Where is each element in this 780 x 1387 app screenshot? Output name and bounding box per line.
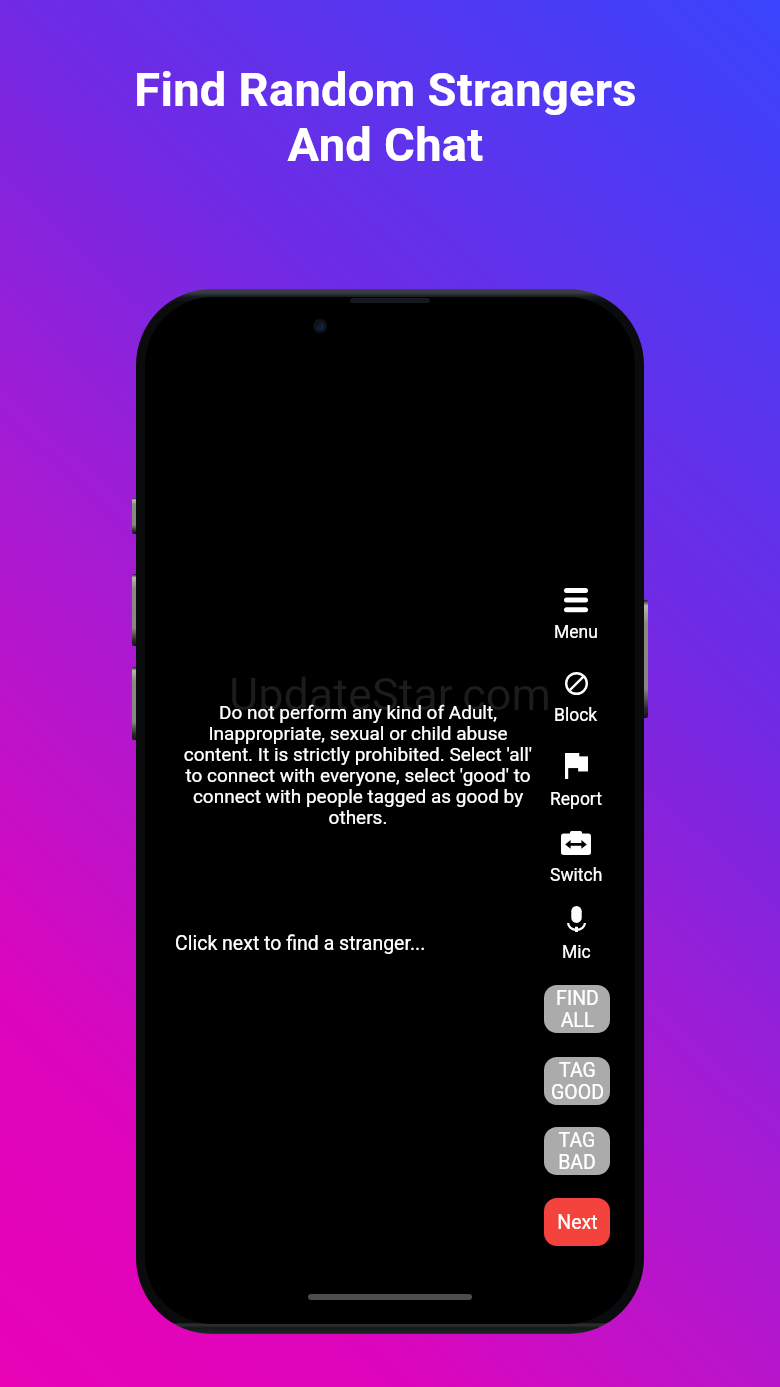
button[interactable]: TAG BAD — [544, 1127, 610, 1175]
button[interactable]: FIND ALL — [544, 985, 610, 1033]
staticText: FIND ALL — [556, 987, 599, 1032]
staticText: Switch — [550, 865, 603, 886]
staticText: TAG GOOD — [551, 1059, 604, 1104]
staticText: TAG BAD — [558, 1129, 596, 1174]
button[interactable]: Switch — [542, 831, 610, 886]
button[interactable]: Block — [542, 672, 610, 726]
staticText: Block — [554, 705, 598, 726]
staticText: Click next to find a stranger... — [175, 932, 426, 955]
button[interactable]: Mic — [542, 906, 610, 963]
staticText: Do not perform any kind of Adult, Inappr… — [180, 701, 536, 828]
staticText: Find Random Strangers And Chat — [134, 62, 637, 173]
button[interactable]: Menu — [542, 588, 610, 643]
button[interactable]: Next — [544, 1198, 610, 1246]
staticText: Mic — [562, 942, 591, 963]
button[interactable]: TAG GOOD — [544, 1057, 610, 1105]
staticText: Next — [557, 1211, 598, 1234]
staticText: Report — [550, 789, 602, 810]
button[interactable]: Report — [542, 753, 610, 810]
staticText: UpdateStar.com — [229, 668, 551, 721]
staticText: Menu — [554, 622, 598, 643]
